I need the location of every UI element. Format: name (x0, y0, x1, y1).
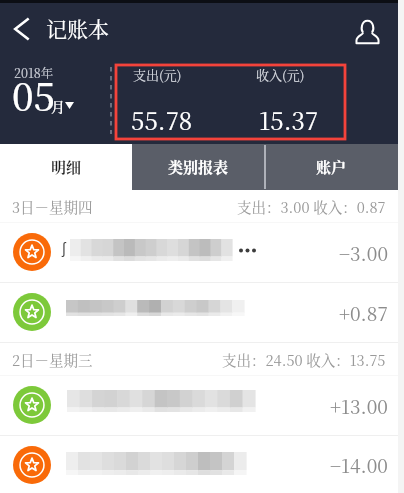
staticText: 05 (12, 67, 56, 122)
button[interactable]: +13.00 (0, 376, 398, 435)
staticText: 3日－星期四 (12, 196, 93, 217)
staticText: 明细 (51, 156, 82, 178)
staticText: −3.00 (339, 239, 388, 266)
staticText: 55.78 (131, 102, 193, 136)
button[interactable]: −14.00 (0, 436, 398, 493)
staticText: 月 (51, 96, 65, 116)
staticText: 2018年 (14, 64, 54, 82)
button[interactable]: 类别报表 (132, 144, 265, 190)
staticText: ʃ (62, 237, 66, 257)
staticText: 支出：24.50 收入：13.75 (222, 349, 386, 370)
staticText: 收入(元) (256, 65, 305, 84)
staticText: 支出：3.00 收入：0.87 (237, 196, 386, 217)
staticText: −14.00 (330, 451, 388, 478)
staticText: 15.37 (259, 102, 319, 136)
button[interactable]: ʃ (0, 223, 398, 282)
staticText: 账户 (316, 156, 347, 178)
button[interactable]: +0.87 (0, 283, 398, 342)
staticText: 2日－星期三 (12, 349, 93, 370)
button[interactable]: 账户 (265, 144, 398, 190)
staticText: 记账本 (46, 13, 109, 43)
staticText: +0.87 (339, 299, 388, 326)
staticText: 支出(元) (133, 65, 182, 84)
button[interactable]: Back (5, 13, 39, 47)
staticText: +13.00 (330, 392, 388, 419)
staticText: 类别报表 (168, 156, 229, 178)
button[interactable]: 明细 (0, 144, 132, 190)
button[interactable]: Profile (347, 11, 389, 53)
